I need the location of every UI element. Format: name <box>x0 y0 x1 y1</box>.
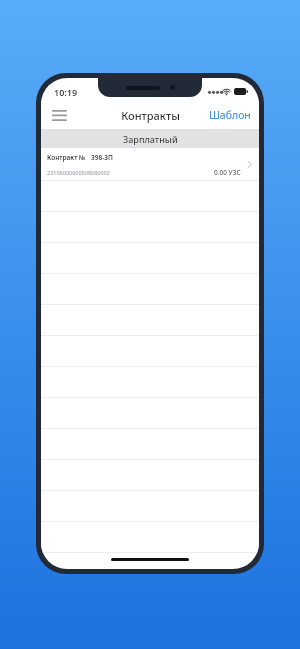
button[interactable] <box>41 491 259 522</box>
staticText: Контракты <box>121 108 180 123</box>
button[interactable] <box>41 212 259 243</box>
button[interactable] <box>41 181 259 212</box>
staticText: Зарплатный <box>123 133 178 145</box>
button[interactable] <box>41 274 259 305</box>
staticText: 23106000600508080002 <box>47 169 110 176</box>
staticText: Шаблон <box>209 108 251 122</box>
button[interactable] <box>41 367 259 398</box>
button[interactable]: Menu <box>46 102 72 128</box>
button[interactable] <box>41 336 259 367</box>
button[interactable] <box>41 243 259 274</box>
button[interactable] <box>41 429 259 460</box>
button[interactable] <box>41 305 259 336</box>
button[interactable] <box>41 460 259 491</box>
staticText: Контракт № <box>47 153 86 162</box>
staticText: 10:19 <box>54 86 78 98</box>
staticText: 0.00 УЗС <box>214 168 241 177</box>
staticText: 398-ЗП <box>91 153 113 162</box>
button[interactable]: Контракт № <box>41 148 259 181</box>
button[interactable]: Шаблон <box>201 103 259 127</box>
button[interactable] <box>41 522 259 553</box>
button[interactable] <box>41 398 259 429</box>
